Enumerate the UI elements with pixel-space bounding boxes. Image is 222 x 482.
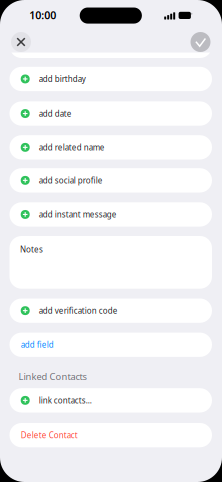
staticText: add date bbox=[39, 108, 72, 119]
staticText: Notes bbox=[20, 244, 43, 255]
button[interactable]: add verification code bbox=[9, 298, 212, 323]
staticText: 10:00 bbox=[29, 8, 56, 22]
staticText: Delete Contact bbox=[21, 430, 78, 440]
staticText: add related name bbox=[39, 142, 105, 153]
staticText: add social profile bbox=[39, 175, 103, 186]
button[interactable]: add instant message bbox=[9, 202, 212, 227]
staticText: add instant message bbox=[39, 209, 117, 220]
staticText: link contacts... bbox=[39, 395, 92, 406]
button[interactable]: add birthday bbox=[9, 67, 212, 91]
staticText: Linked Contacts bbox=[18, 370, 86, 383]
staticText: add birthday bbox=[39, 74, 86, 84]
button[interactable]: add date bbox=[9, 101, 212, 126]
button[interactable]: add social profile bbox=[9, 168, 212, 192]
button[interactable]: Done bbox=[190, 32, 210, 52]
button[interactable]: Cancel bbox=[11, 32, 31, 52]
button[interactable]: link contacts... bbox=[9, 388, 212, 412]
button[interactable]: Delete Contact bbox=[9, 423, 212, 447]
staticText: add field bbox=[21, 339, 54, 350]
button[interactable]: add related name bbox=[9, 135, 212, 159]
staticText: add verification code bbox=[39, 305, 118, 316]
button[interactable]: add field bbox=[9, 333, 212, 357]
